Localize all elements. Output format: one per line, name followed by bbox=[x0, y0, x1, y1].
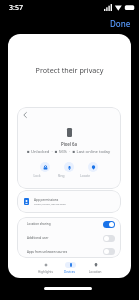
button[interactable]: Ring bbox=[64, 162, 74, 172]
staticText: App permissions bbox=[34, 198, 59, 202]
staticText: Location bbox=[89, 270, 102, 274]
button[interactable]: Locate bbox=[88, 162, 98, 172]
button[interactable]: Highlights bbox=[34, 262, 56, 274]
button[interactable]: App permissions bbox=[17, 190, 121, 213]
staticText: 3:57 bbox=[9, 3, 23, 13]
staticText: Camera, contacts, files and media bbox=[34, 203, 66, 206]
button[interactable]: Apps from unknown sources bbox=[17, 245, 121, 258]
staticText: ▪ Unlocked · ▪ 56% · ▪ Last online today bbox=[27, 149, 111, 155]
staticText: Apps from unknown sources bbox=[27, 250, 103, 254]
staticText: Highlights bbox=[38, 270, 53, 274]
staticText: Locate bbox=[80, 174, 90, 178]
button[interactable]: Additional user bbox=[17, 231, 121, 245]
button[interactable]: Back bbox=[19, 109, 30, 120]
button[interactable]: Devices bbox=[59, 262, 81, 274]
staticText: Pixel 6a bbox=[61, 141, 78, 147]
button[interactable]: Location bbox=[84, 262, 106, 274]
staticText: Lock bbox=[32, 174, 42, 178]
staticText: Protect their privacy bbox=[8, 65, 131, 75]
staticText: Done bbox=[110, 18, 131, 29]
staticText: Devices bbox=[64, 270, 76, 274]
staticText: Location sharing bbox=[27, 222, 103, 226]
staticText: Additional user bbox=[27, 236, 103, 240]
button[interactable]: Done bbox=[107, 16, 134, 31]
button[interactable]: Location sharing bbox=[17, 217, 121, 231]
staticText: Ring bbox=[56, 174, 66, 178]
button[interactable]: Lock bbox=[40, 162, 50, 172]
